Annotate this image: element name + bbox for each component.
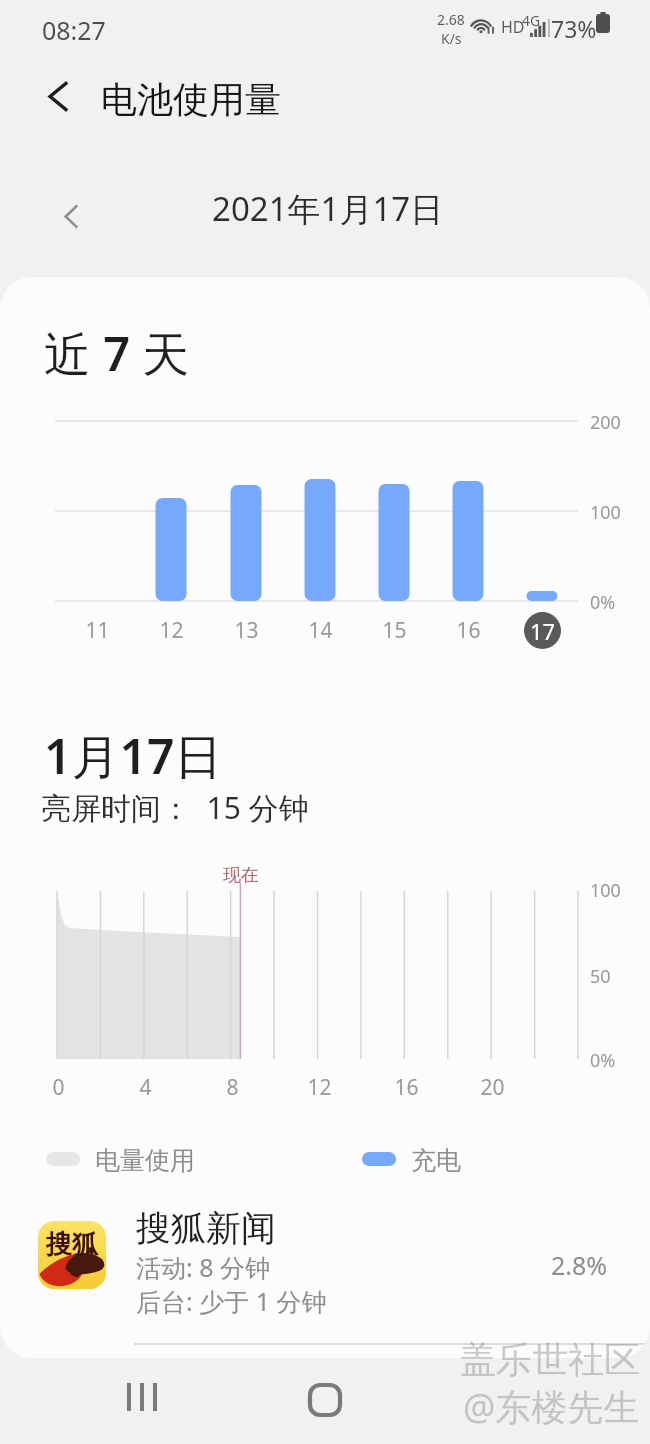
staticText: 搜狐新闻 [136,1206,276,1250]
staticText: @东楼先生 [463,1382,640,1431]
button[interactable]: Previous day [41,186,101,246]
staticText: 2021年1月17日 [212,186,444,231]
staticText: 73% [551,13,597,44]
staticText: 电量使用 [95,1145,195,1176]
staticText: 15 [382,616,407,645]
staticText: 1月17日 [44,723,223,789]
staticText: K/s [441,29,462,48]
staticText: 200 [590,410,621,435]
button[interactable]: 17 [524,612,561,649]
staticText: 13 [234,616,259,645]
staticText: 盖乐世社区 [460,1337,640,1382]
staticText: 0% [590,590,616,615]
staticText: HD [501,16,525,38]
staticText: 17 [530,616,556,646]
staticText: 12 [307,1073,332,1102]
staticText: 16 [456,616,481,645]
staticText: 电池使用量 [101,77,281,122]
staticText: 8 [226,1073,239,1102]
button[interactable]: Recent apps [100,1354,186,1440]
staticText: 100 [590,500,621,525]
staticText: 活动: 8 分钟 [136,1250,271,1284]
staticText: 100 [590,878,621,903]
staticText: 0% [590,1048,616,1073]
staticText: 11 [85,616,110,645]
staticText: 后台: 少于 1 分钟 [136,1284,327,1318]
staticText: 14 [308,616,333,645]
staticText: 亮屏时间： 15 分钟 [41,787,309,828]
staticText: 12 [159,616,184,645]
staticText: 搜狐 [46,1228,98,1261]
button[interactable]: Home [282,1357,368,1443]
staticText: 近 7 天 [44,321,190,385]
staticText: 50 [590,964,611,989]
staticText: 0 [52,1073,65,1102]
staticText: 2.8% [551,1248,608,1282]
staticText: 4G [522,11,541,30]
staticText: 现在 [223,864,259,887]
staticText: 20 [480,1073,505,1102]
button[interactable]: Back [28,50,88,142]
staticText: 2.68 [437,10,465,29]
staticText: 4 [139,1073,152,1102]
staticText: 08:27 [42,13,106,47]
button[interactable]: 搜狐 [0,1204,650,1334]
staticText: 充电 [411,1145,461,1176]
staticText: 16 [394,1073,419,1102]
